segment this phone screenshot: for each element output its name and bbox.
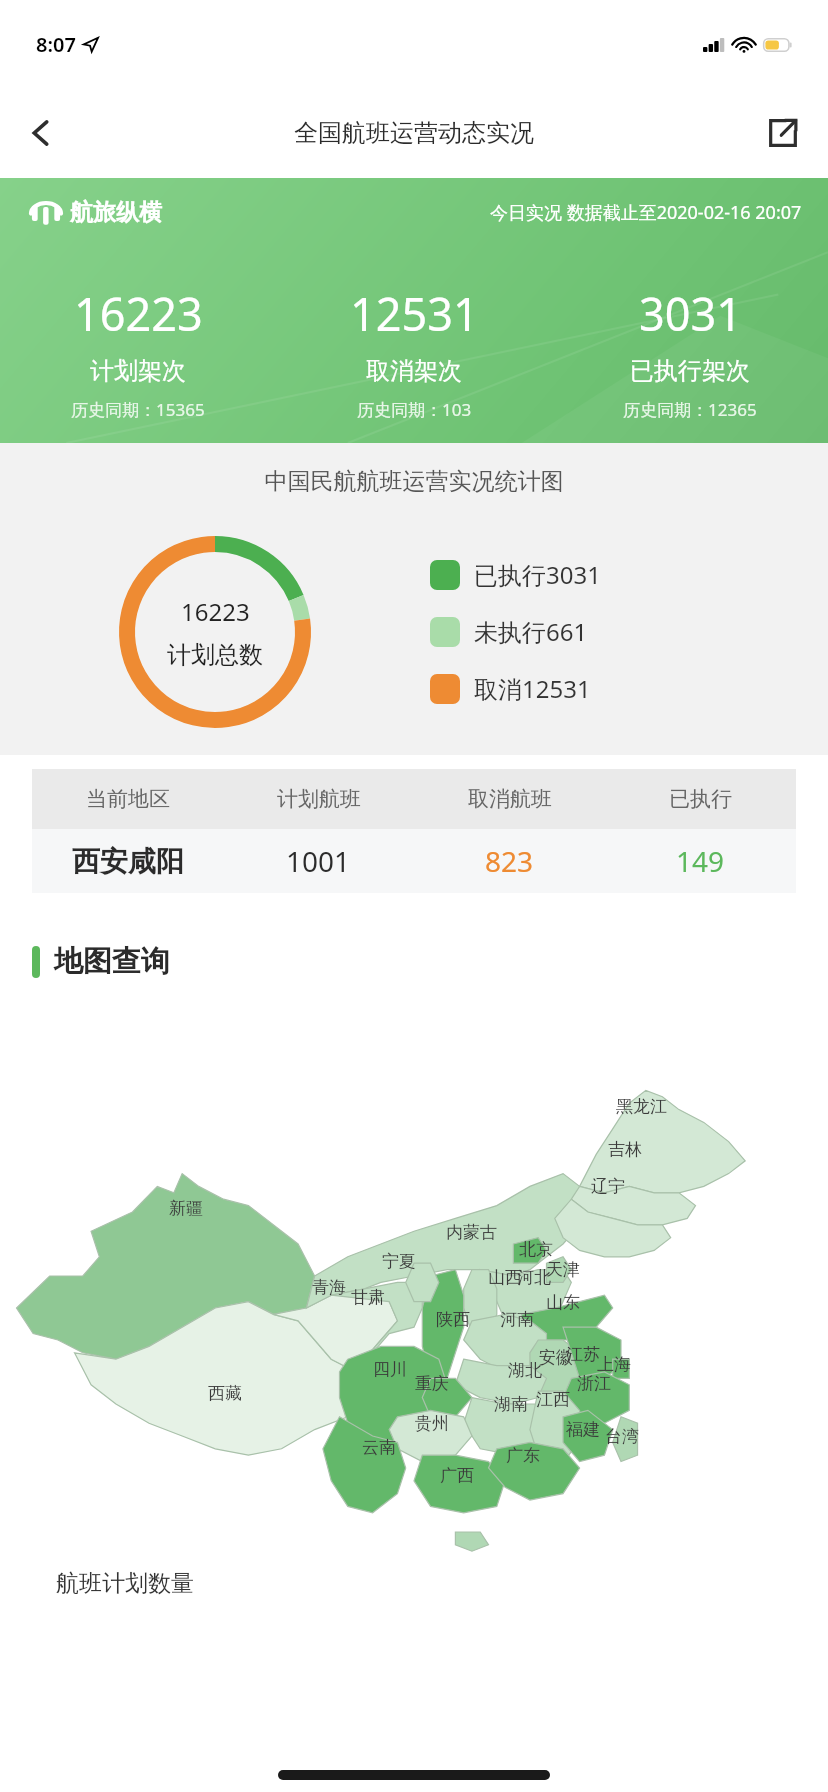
staticText: 航旅纵横 xyxy=(70,198,162,227)
staticText: 今日实况 数据截止至2020-02-16 20:07 xyxy=(490,200,802,225)
staticText: 西安咸阳 xyxy=(72,844,184,879)
staticText: 辽宁 xyxy=(591,1176,625,1197)
staticText: 全国航班运营动态实况 xyxy=(294,118,534,148)
staticText: 四川 xyxy=(373,1359,407,1380)
staticText: 历史同期：103 xyxy=(357,398,472,421)
staticText: 8:07 xyxy=(36,31,76,58)
staticText: 甘肃 xyxy=(351,1287,385,1308)
staticText: 历史同期：12365 xyxy=(623,398,757,421)
staticText: 取消12531 xyxy=(474,672,591,705)
staticText: 计划航班 xyxy=(277,786,361,812)
staticText: 重庆 xyxy=(415,1373,449,1394)
staticText: 安徽 xyxy=(539,1347,573,1368)
staticText: 12531 xyxy=(350,283,479,344)
staticText: 计划总数 xyxy=(167,640,263,670)
staticText: 天津 xyxy=(546,1259,580,1280)
staticText: 江西 xyxy=(536,1389,570,1410)
staticText: 计划架次 xyxy=(90,356,186,386)
staticText: 已执行3031 xyxy=(474,558,601,591)
staticText: 浙江 xyxy=(577,1373,611,1394)
button[interactable]: Back xyxy=(12,104,70,162)
staticText: 中国民航航班运营实况统计图 xyxy=(0,467,828,496)
staticText: 江苏 xyxy=(566,1344,600,1365)
staticText: 云南 xyxy=(362,1437,396,1458)
staticText: 山东 xyxy=(546,1292,580,1313)
staticText: 广东 xyxy=(506,1445,540,1466)
staticText: 台湾 xyxy=(605,1426,639,1447)
staticText: 已执行架次 xyxy=(630,356,750,386)
staticText: 取消航班 xyxy=(468,786,552,812)
staticText: 上海 xyxy=(597,1354,631,1375)
staticText: 北京 xyxy=(519,1239,553,1260)
staticText: 山西 xyxy=(488,1267,522,1288)
staticText: 河南 xyxy=(500,1309,534,1330)
staticText: 黑龙江 xyxy=(616,1096,667,1117)
button[interactable]: 取消12531 xyxy=(430,670,591,707)
staticText: 历史同期：15365 xyxy=(71,398,205,421)
button[interactable]: 已执行3031 xyxy=(430,556,601,593)
staticText: 16223 xyxy=(181,595,250,628)
staticText: 已执行 xyxy=(669,786,732,812)
staticText: 16223 xyxy=(74,283,203,344)
button[interactable]: 西安咸阳 xyxy=(32,829,796,893)
staticText: 福建 xyxy=(566,1419,600,1440)
staticText: 河北 xyxy=(517,1267,551,1288)
staticText: 吉林 xyxy=(608,1139,642,1160)
staticText: 贵州 xyxy=(415,1413,449,1434)
staticText: 湖南 xyxy=(494,1394,528,1415)
staticText: 地图查询 xyxy=(54,943,170,980)
staticText: 湖北 xyxy=(508,1360,542,1381)
staticText: 航班计划数量 xyxy=(56,1569,194,1598)
staticText: 149 xyxy=(676,842,725,880)
staticText: 3031 xyxy=(639,283,742,344)
staticText: 宁夏 xyxy=(382,1251,416,1272)
staticText: 陕西 xyxy=(436,1309,470,1330)
staticText: 未执行661 xyxy=(474,615,588,648)
staticText: 1001 xyxy=(286,842,351,880)
button[interactable]: 未执行661 xyxy=(430,613,588,650)
staticText: 内蒙古 xyxy=(446,1222,497,1243)
staticText: 取消架次 xyxy=(366,356,462,386)
button[interactable]: Share xyxy=(754,104,812,162)
staticText: 青海 xyxy=(312,1277,346,1298)
staticText: 西藏 xyxy=(208,1383,242,1404)
staticText: 新疆 xyxy=(169,1198,203,1219)
staticText: 823 xyxy=(485,842,534,880)
staticText: 广西 xyxy=(440,1465,474,1486)
staticText: 当前地区 xyxy=(86,786,170,812)
